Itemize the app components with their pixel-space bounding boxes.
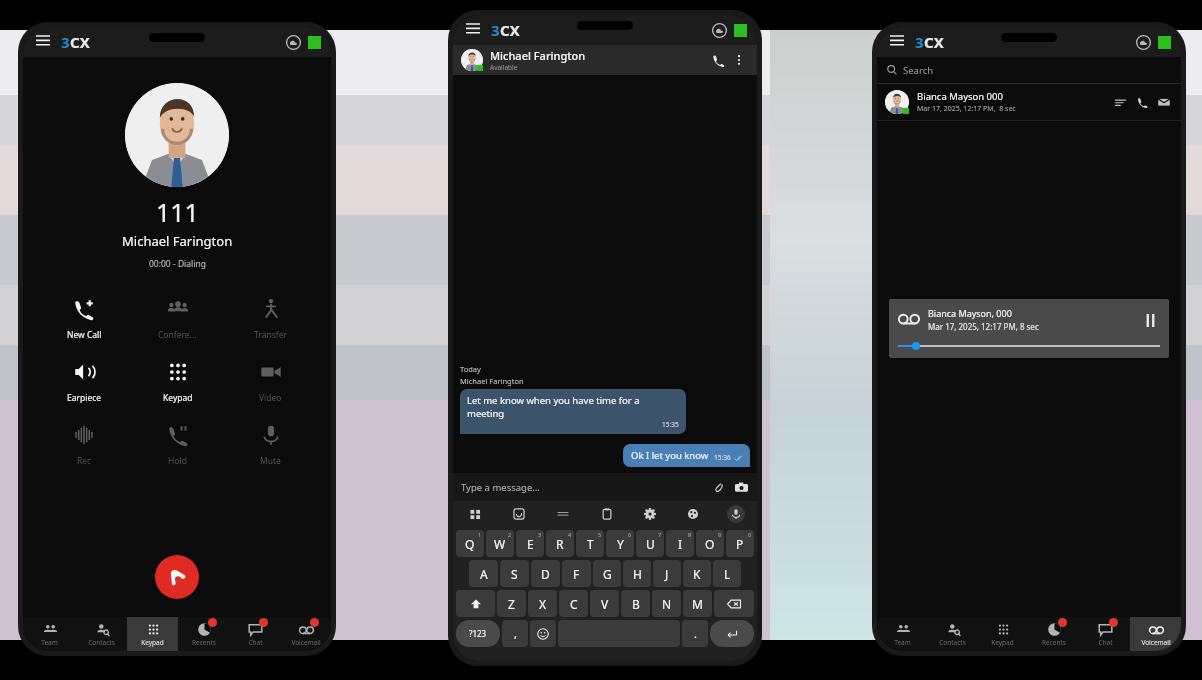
button[interactable]: J [653, 560, 681, 587]
button[interactable]: Voicemail [1130, 617, 1181, 651]
button[interactable]: Earpiece [37, 359, 131, 404]
button[interactable]: Enter [710, 620, 754, 647]
button[interactable]: Voicemail [280, 617, 331, 651]
button[interactable]: Keypad [127, 617, 178, 651]
staticText: Michael Farington [460, 376, 524, 386]
button[interactable]: Keyboard tool 1 [497, 501, 541, 527]
button[interactable]: Menu [887, 32, 907, 52]
button[interactable]: P [726, 530, 754, 557]
button[interactable]: C [559, 590, 588, 617]
staticText: 7 [658, 531, 662, 538]
button[interactable]: Recents [1028, 617, 1079, 651]
staticText: Let me know when you have time for a mee… [467, 394, 679, 420]
button[interactable]: V [590, 590, 619, 617]
button[interactable]: Emoji [530, 620, 556, 647]
button[interactable]: Q [456, 530, 484, 557]
button[interactable]: Shift [456, 590, 495, 617]
button[interactable]: A [469, 560, 498, 587]
button[interactable]: Transcript [1111, 93, 1129, 111]
staticText: Mar 17, 2025, 12:17 PM, 8 sec [917, 104, 1016, 114]
button[interactable]: K [683, 560, 711, 587]
button[interactable]: T [576, 530, 604, 557]
button[interactable]: Bianca Mayson 000 [885, 84, 1173, 120]
button[interactable]: Mark as read [1155, 93, 1173, 111]
button[interactable]: Cloud status [284, 33, 302, 51]
staticText: 4 [568, 531, 572, 538]
button[interactable]: Transfer [224, 296, 317, 341]
button[interactable]: Keyboard tool 4 [628, 501, 671, 527]
button[interactable]: Chat [1079, 617, 1130, 651]
button[interactable]: Attach [711, 479, 727, 495]
button[interactable]: Keyboard tool 5 [671, 501, 714, 527]
staticText: P [736, 536, 744, 552]
button[interactable]: R [546, 530, 574, 557]
button[interactable]: Backspace [714, 590, 754, 617]
staticText: A [480, 566, 488, 582]
button[interactable]: Call [707, 49, 729, 71]
button[interactable]: Bianca Mayson, 000 [889, 299, 1169, 358]
button[interactable]: , [502, 620, 528, 647]
button[interactable]: O [696, 530, 724, 557]
button[interactable]: Menu [33, 32, 53, 52]
button[interactable]: More options [729, 50, 749, 70]
button[interactable]: Keyboard tool 2 [541, 501, 585, 527]
button[interactable]: Recents [178, 617, 229, 651]
button[interactable]: X [528, 590, 557, 617]
button[interactable]: ?123 [456, 620, 500, 647]
button[interactable]: I [666, 530, 694, 557]
button[interactable]: Contacts [75, 617, 127, 651]
staticText: S [511, 566, 518, 582]
button[interactable]: L [713, 560, 741, 587]
button[interactable]: Michael Farington [461, 45, 749, 75]
button[interactable]: Ok I let you know [623, 444, 750, 467]
button[interactable]: . [682, 620, 708, 647]
button[interactable]: Y [606, 530, 634, 557]
button[interactable]: Team [877, 617, 927, 651]
button[interactable]: Pause [1140, 310, 1160, 330]
button[interactable]: U [636, 530, 664, 557]
button[interactable]: Keypad [131, 359, 224, 404]
button[interactable]: Menu [463, 20, 483, 40]
button[interactable]: N [652, 590, 681, 617]
button[interactable]: Camera [733, 479, 749, 495]
button[interactable]: G [593, 560, 621, 587]
staticText: H [633, 566, 642, 582]
button[interactable]: New Call [37, 296, 131, 341]
button[interactable]: S [500, 560, 529, 587]
button[interactable]: Z [497, 590, 526, 617]
button[interactable]: Cloud status [710, 21, 728, 39]
button[interactable]: Keyboard tool 6 [714, 501, 757, 527]
button[interactable]: Keyboard tool 3 [585, 501, 628, 527]
button[interactable]: Search [887, 57, 1171, 83]
staticText: N [662, 596, 672, 612]
button[interactable]: Call back [1133, 93, 1151, 111]
button[interactable]: Video [224, 359, 317, 404]
button[interactable]: End call [155, 555, 199, 599]
button[interactable]: Let me know when you have time for a mee… [460, 389, 686, 434]
button[interactable]: Mute [224, 422, 317, 467]
button[interactable]: M [683, 590, 712, 617]
staticText: R [556, 536, 564, 552]
button[interactable]: Chat [229, 617, 280, 651]
button[interactable]: B [621, 590, 650, 617]
button[interactable]: H [623, 560, 651, 587]
button[interactable]: Contacts [927, 617, 977, 651]
button[interactable]: W [486, 530, 514, 557]
button[interactable]: Cloud status [1134, 33, 1152, 51]
button[interactable]: E [516, 530, 544, 557]
button[interactable]: Hold [131, 422, 224, 467]
button[interactable]: F [562, 560, 591, 587]
button[interactable]: Confere... [131, 296, 224, 341]
staticText: . [694, 626, 697, 641]
button[interactable]: D [531, 560, 560, 587]
staticText: Z [508, 596, 515, 612]
button[interactable]: Keypad [977, 617, 1028, 651]
button[interactable]: Rec [37, 422, 131, 467]
button[interactable]: Type a message... [461, 473, 749, 501]
button[interactable]: Team [23, 617, 75, 651]
button[interactable]: Keyboard tool 0 [453, 501, 497, 527]
